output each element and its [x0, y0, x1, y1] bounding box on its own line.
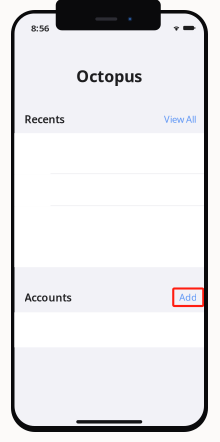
staticText: Octopus [76, 65, 142, 87]
staticText: Add [179, 291, 197, 303]
staticText: View All [164, 113, 196, 125]
staticText: 8:56 [31, 22, 49, 34]
staticText: Accounts [24, 290, 71, 304]
staticText: Recents [24, 112, 64, 126]
button[interactable]: Add [173, 291, 196, 303]
button[interactable]: View All [164, 113, 196, 125]
